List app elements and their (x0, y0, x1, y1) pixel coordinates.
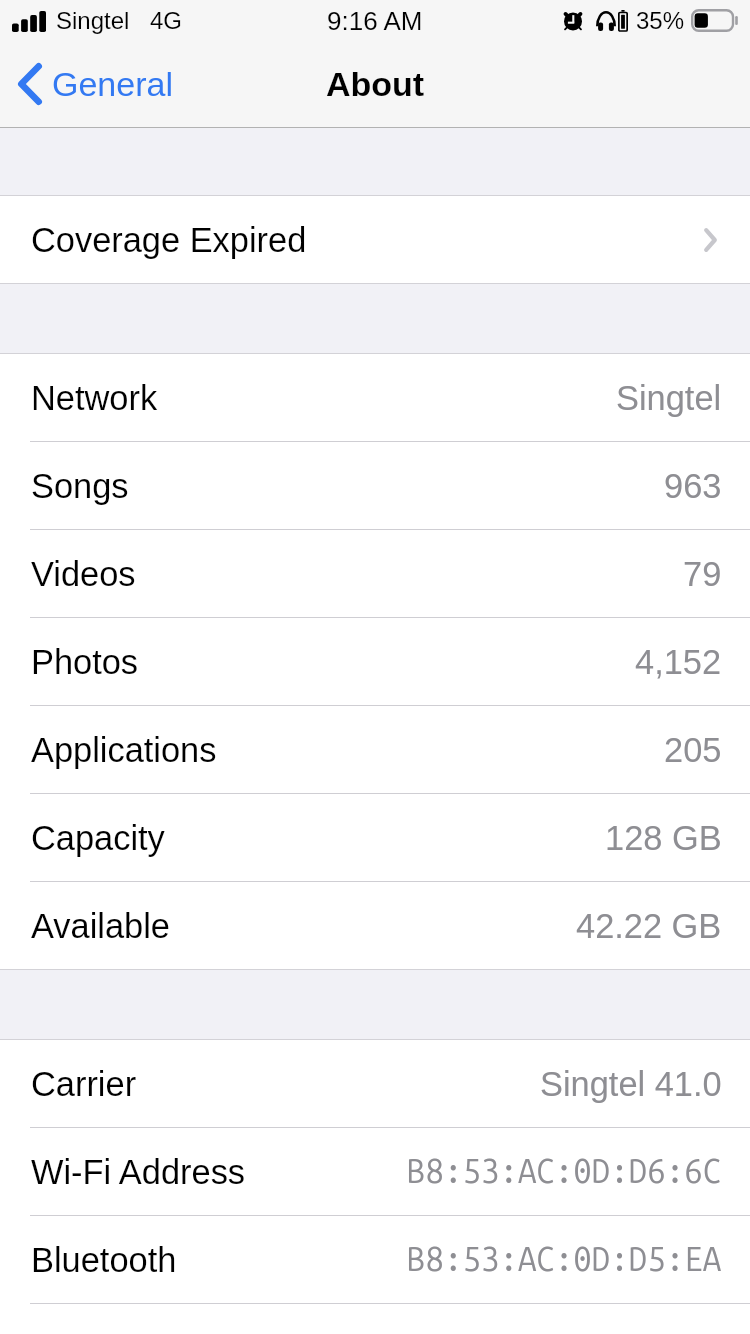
other: More info (704, 228, 717, 252)
staticText: Network (31, 379, 158, 417)
staticText: Singtel (56, 7, 130, 34)
button[interactable]: Back to General (0, 57, 187, 111)
staticText: Coverage Expired (31, 221, 307, 259)
staticText: About (326, 65, 425, 103)
button[interactable]: Capacity (0, 794, 750, 881)
staticText: 79 (683, 555, 722, 593)
staticText: General (52, 65, 173, 103)
staticText: B8:53:AC:0D:D6:6C (407, 1152, 722, 1192)
other: Back to General (18, 63, 42, 105)
button[interactable]: Coverage Expired (0, 196, 750, 283)
button[interactable]: Photos (0, 618, 750, 705)
staticText: 963 (664, 467, 722, 505)
staticText: Singtel 41.0 (540, 1065, 722, 1103)
button[interactable]: Carrier (0, 1040, 750, 1127)
staticText: 205 (664, 731, 722, 769)
other: Alarm set (563, 10, 583, 31)
button[interactable]: Wi-Fi Address (0, 1128, 750, 1215)
staticText: Songs (31, 467, 129, 505)
button[interactable]: Videos (0, 530, 750, 617)
staticText: Wi-Fi Address (31, 1153, 246, 1191)
staticText: 35% (636, 7, 685, 34)
staticText: 128 GB (605, 819, 722, 857)
other: Accessory battery (618, 10, 628, 31)
staticText: 4G (150, 7, 183, 34)
staticText: Available (31, 907, 170, 945)
staticText: Photos (31, 643, 139, 681)
other: Headphones connected (596, 11, 616, 31)
staticText: Capacity (31, 819, 165, 857)
staticText: Carrier (31, 1065, 137, 1103)
staticText: 9:16 AM (327, 6, 423, 35)
button[interactable]: Applications (0, 706, 750, 793)
staticText: B8:53:AC:0D:D5:EA (407, 1240, 722, 1280)
staticText: Singtel (616, 379, 722, 417)
button[interactable]: Songs (0, 442, 750, 529)
button[interactable]: Available (0, 882, 750, 969)
staticText: Applications (31, 731, 217, 769)
staticText: Videos (31, 555, 136, 593)
staticText: 42.22 GB (576, 907, 722, 945)
button[interactable]: Bluetooth (0, 1216, 750, 1303)
button[interactable]: Network (0, 354, 750, 441)
staticText: Bluetooth (31, 1241, 177, 1279)
staticText: 4,152 (635, 643, 722, 681)
